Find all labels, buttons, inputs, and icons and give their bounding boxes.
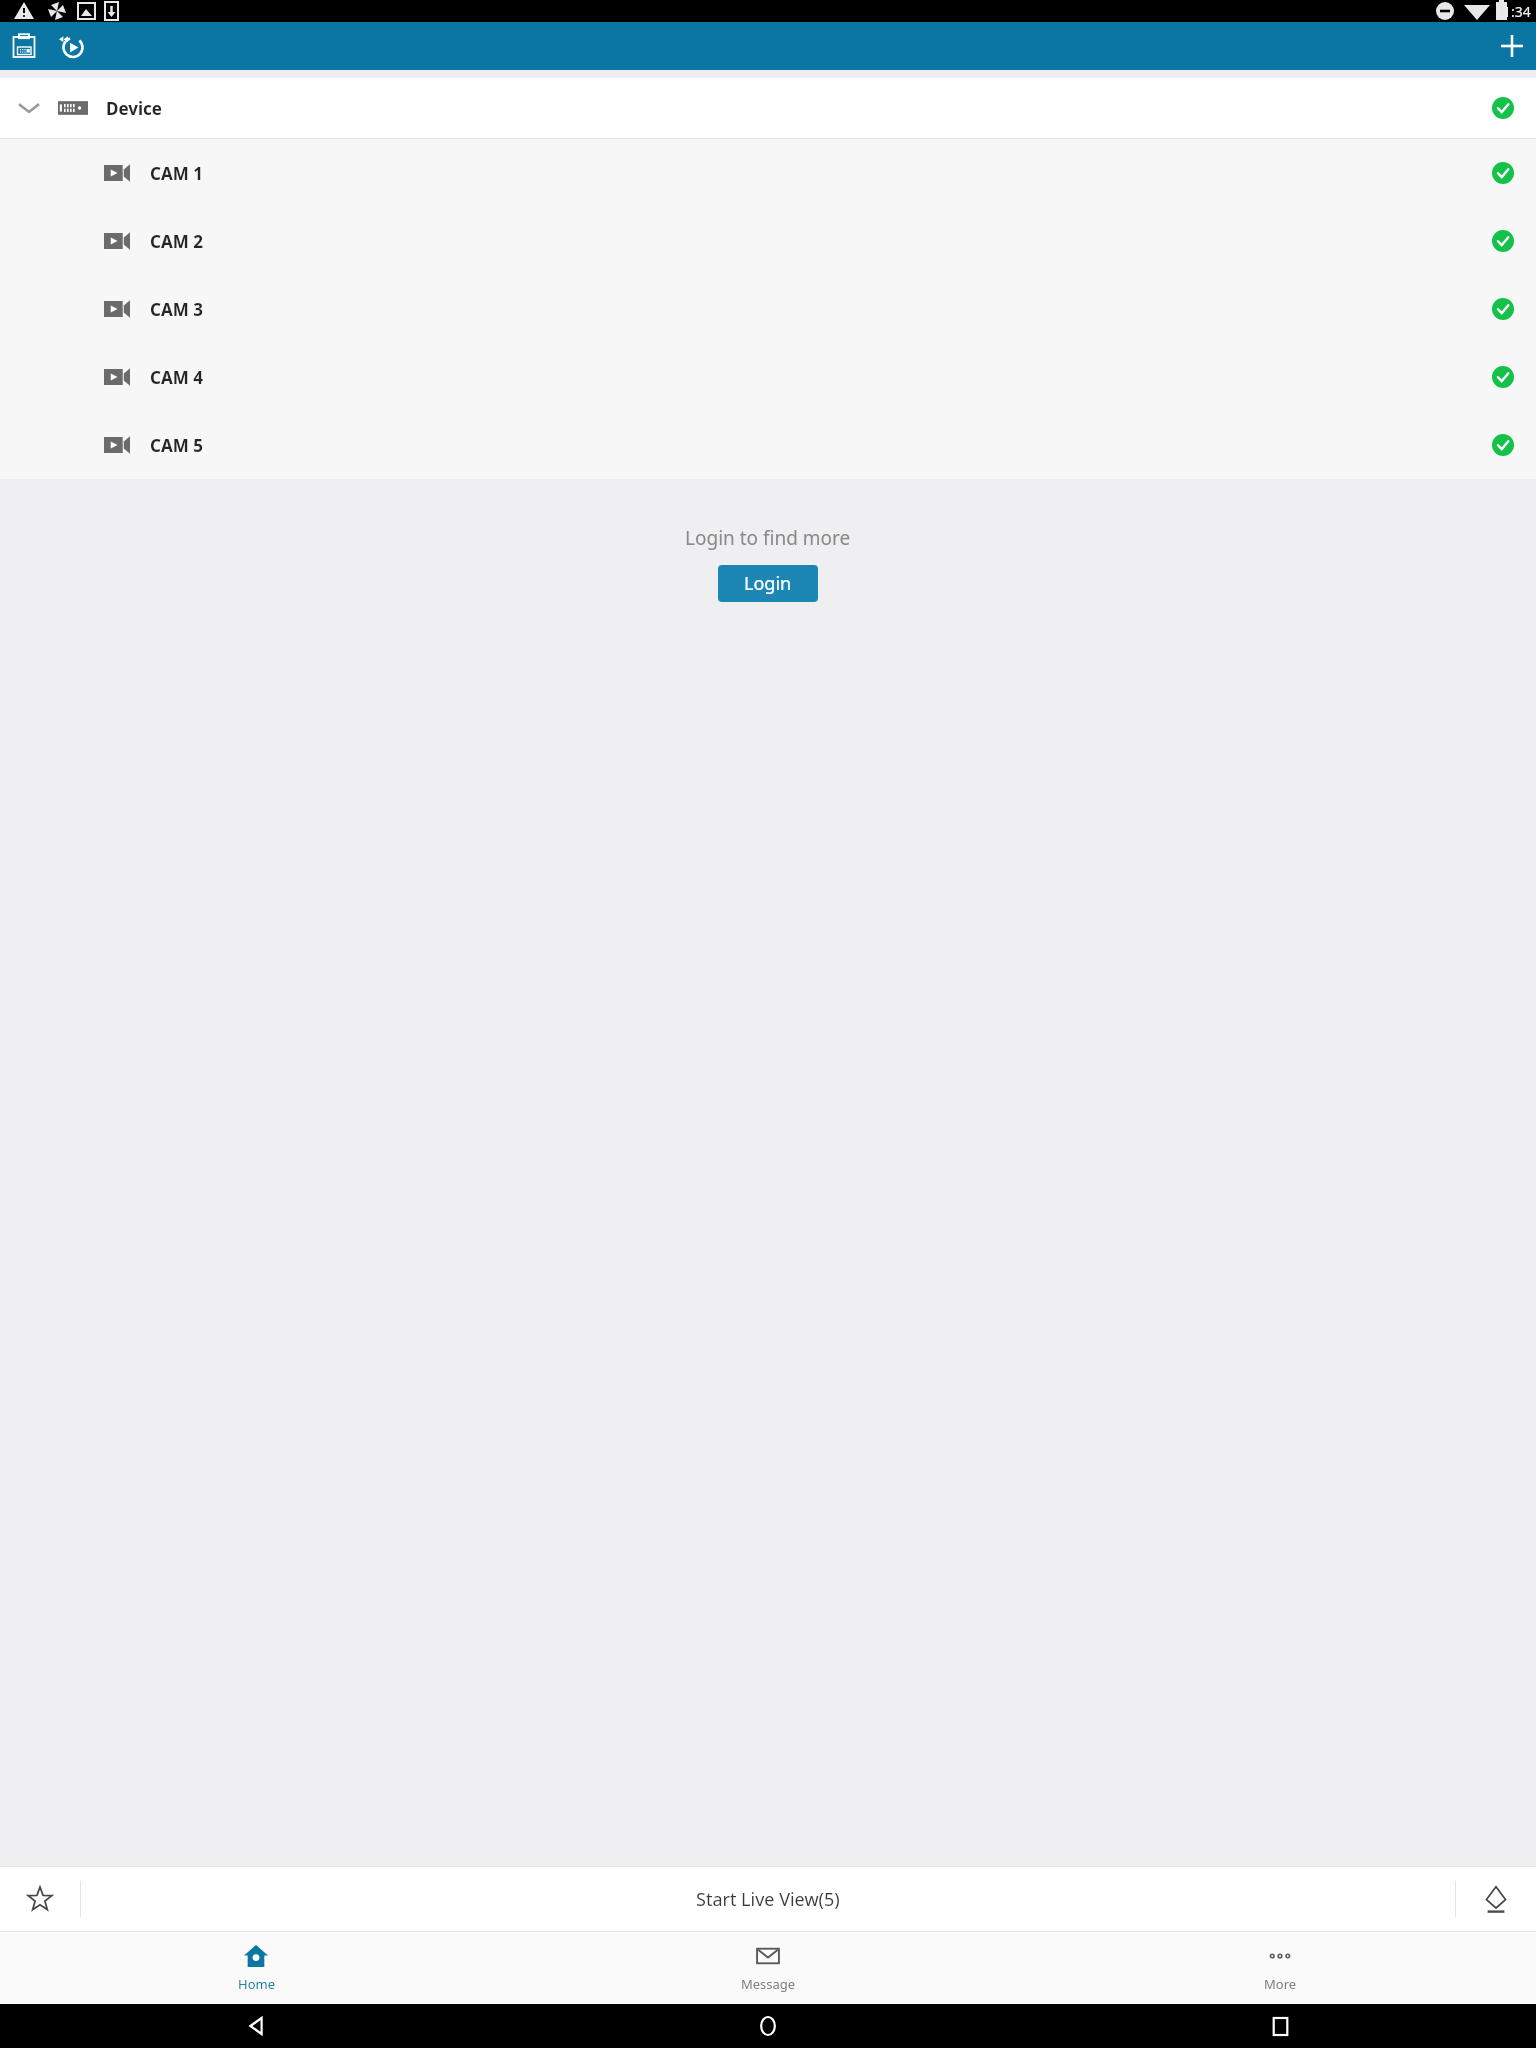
staticText: Login — [744, 571, 792, 596]
button[interactable]: Device — [0, 78, 1536, 138]
button[interactable]: Login — [718, 565, 818, 602]
button[interactable]: More — [1024, 1932, 1536, 2004]
button[interactable]: CAM 3 — [0, 275, 1536, 343]
button[interactable]: Add — [1488, 22, 1536, 70]
staticText: CAM 3 — [150, 298, 203, 321]
button[interactable]: Device list — [0, 22, 48, 70]
staticText: More — [1264, 1975, 1297, 1993]
button[interactable]: Playback — [48, 22, 96, 70]
button[interactable]: CAM 4 — [0, 343, 1536, 411]
button[interactable]: Start Live View(5) — [81, 1867, 1455, 1931]
staticText: CAM 5 — [150, 434, 203, 457]
staticText: Message — [741, 1975, 796, 1993]
staticText: Device — [106, 97, 162, 120]
button[interactable]: Home — [0, 1932, 512, 2004]
button[interactable]: CAM 1 — [0, 139, 1536, 207]
button[interactable]: CAM 2 — [0, 207, 1536, 275]
staticText: CAM 4 — [150, 366, 203, 389]
staticText: Start Live View(5) — [696, 1887, 840, 1912]
staticText: Home — [238, 1975, 275, 1993]
button[interactable]: Home — [512, 2004, 1024, 2048]
staticText: CAM 1 — [150, 162, 203, 185]
button[interactable]: Recents — [1024, 2004, 1536, 2048]
button[interactable]: Favorites — [0, 1867, 80, 1931]
staticText: CAM 2 — [150, 230, 203, 253]
staticText: Login to find more — [685, 525, 851, 551]
button[interactable]: CAM 5 — [0, 411, 1536, 479]
staticText: 11:34 — [1495, 2, 1531, 21]
button[interactable]: Back — [0, 2004, 512, 2048]
button[interactable]: Clear — [1456, 1867, 1536, 1931]
button[interactable]: Message — [512, 1932, 1024, 2004]
